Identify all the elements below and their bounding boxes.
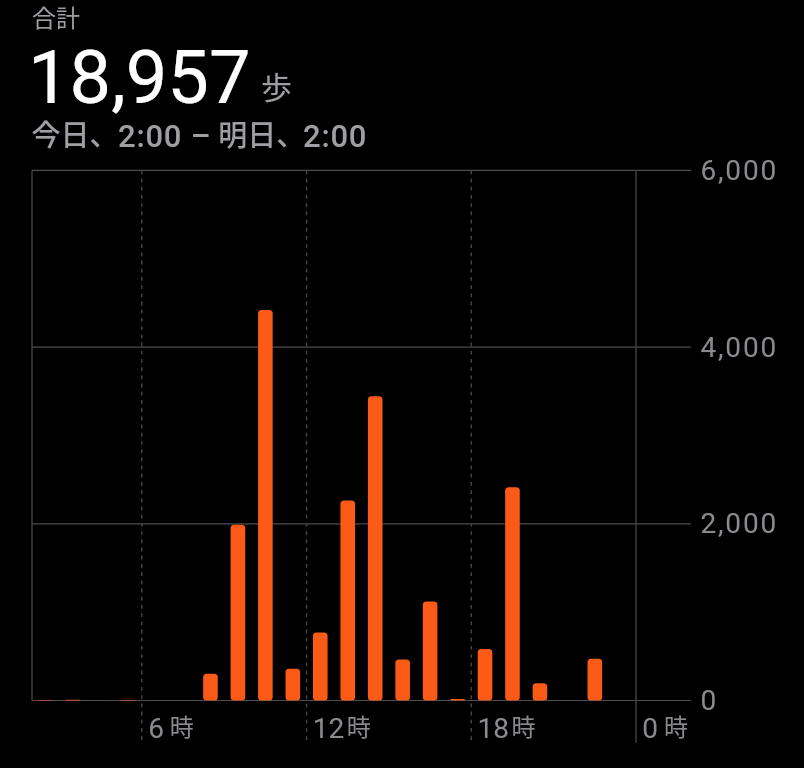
- button[interactable]: Daily step count chart, 18,957 steps: [0, 0, 804, 768]
